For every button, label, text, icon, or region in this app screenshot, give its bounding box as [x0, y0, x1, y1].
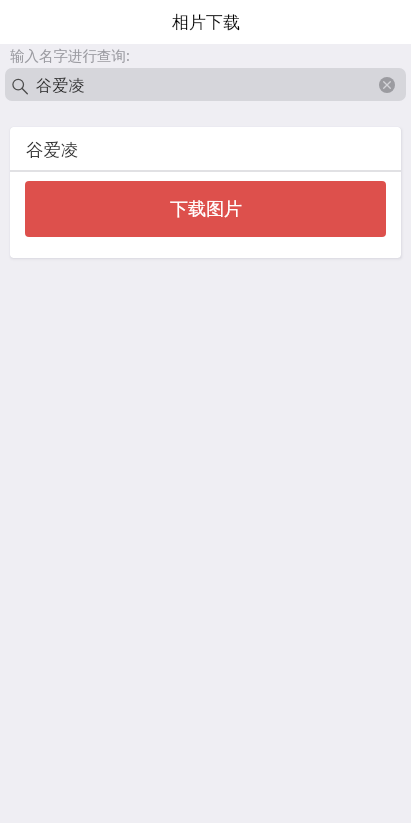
button[interactable]: Clear search: [379, 77, 395, 93]
staticText: 谷爱凌: [36, 75, 85, 95]
button[interactable]: 谷爱凌: [10, 127, 401, 170]
staticText: 谷爱凌: [26, 139, 79, 161]
button[interactable]: 谷爱凌: [5, 68, 406, 101]
staticText: 下载图片: [170, 198, 242, 221]
button[interactable]: 下载图片: [25, 181, 386, 237]
staticText: 相片下载: [172, 12, 240, 33]
staticText: 输入名字进行查询:: [10, 45, 130, 65]
